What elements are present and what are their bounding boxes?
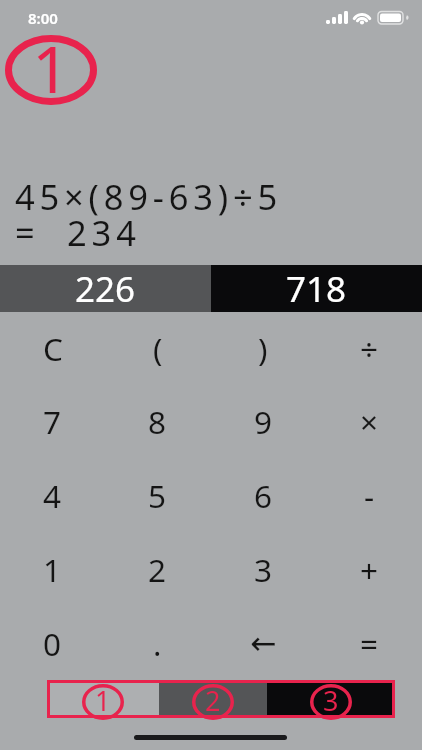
staticText: - xyxy=(364,474,375,517)
staticText: 1 xyxy=(32,23,70,93)
staticText: 45×(89-63)÷5 xyxy=(15,173,283,220)
staticText: 2 xyxy=(148,548,167,591)
staticText: 718 xyxy=(286,265,347,312)
button[interactable]: 8 xyxy=(105,385,210,458)
button[interactable]: 4 xyxy=(0,458,105,532)
staticText: ) xyxy=(258,327,268,370)
button[interactable]: 2 xyxy=(159,680,267,718)
button[interactable]: . xyxy=(105,606,210,680)
button[interactable]: 226 xyxy=(0,265,211,312)
button[interactable]: C xyxy=(0,312,105,385)
button[interactable]: 9 xyxy=(210,385,316,458)
staticText: C xyxy=(43,327,63,370)
button[interactable]: ÷ xyxy=(316,312,422,385)
staticText: 8:00 xyxy=(28,8,58,28)
staticText: × xyxy=(360,400,379,443)
button[interactable]: ← xyxy=(210,606,316,680)
button[interactable]: × xyxy=(316,385,422,458)
staticText: 6 xyxy=(254,474,273,517)
button[interactable]: 1 xyxy=(0,532,105,606)
button[interactable]: ( xyxy=(105,312,210,385)
button[interactable]: 5 xyxy=(105,458,210,532)
staticText: 0 xyxy=(43,622,62,665)
staticText: = xyxy=(360,622,379,665)
button[interactable]: 2 xyxy=(105,532,210,606)
staticText: 226 xyxy=(75,265,136,312)
staticText: ÷ xyxy=(360,327,379,370)
button[interactable]: 1 xyxy=(47,680,159,718)
staticText: 8 xyxy=(148,400,167,443)
button[interactable]: + xyxy=(316,532,422,606)
button[interactable]: ) xyxy=(210,312,316,385)
staticText: ( xyxy=(153,327,163,370)
staticText: 1 xyxy=(95,682,111,718)
staticText: + xyxy=(360,548,379,591)
button[interactable]: 3 xyxy=(267,680,395,718)
staticText: 7 xyxy=(43,400,62,443)
staticText: ← xyxy=(250,625,277,662)
staticText: 2 xyxy=(205,682,221,718)
button[interactable]: 6 xyxy=(210,458,316,532)
staticText: 5 xyxy=(148,474,167,517)
staticText: 3 xyxy=(323,682,339,718)
staticText: 1 xyxy=(43,548,62,591)
staticText: 9 xyxy=(254,400,273,443)
button[interactable]: 718 xyxy=(211,265,422,312)
button[interactable]: 3 xyxy=(210,532,316,606)
button[interactable]: = xyxy=(316,606,422,680)
staticText: = 234 xyxy=(15,209,141,256)
button[interactable]: 7 xyxy=(0,385,105,458)
button[interactable]: - xyxy=(316,458,422,532)
staticText: 4 xyxy=(43,474,62,517)
staticText: 3 xyxy=(254,548,273,591)
staticText: . xyxy=(153,622,162,665)
button[interactable]: 0 xyxy=(0,606,105,680)
